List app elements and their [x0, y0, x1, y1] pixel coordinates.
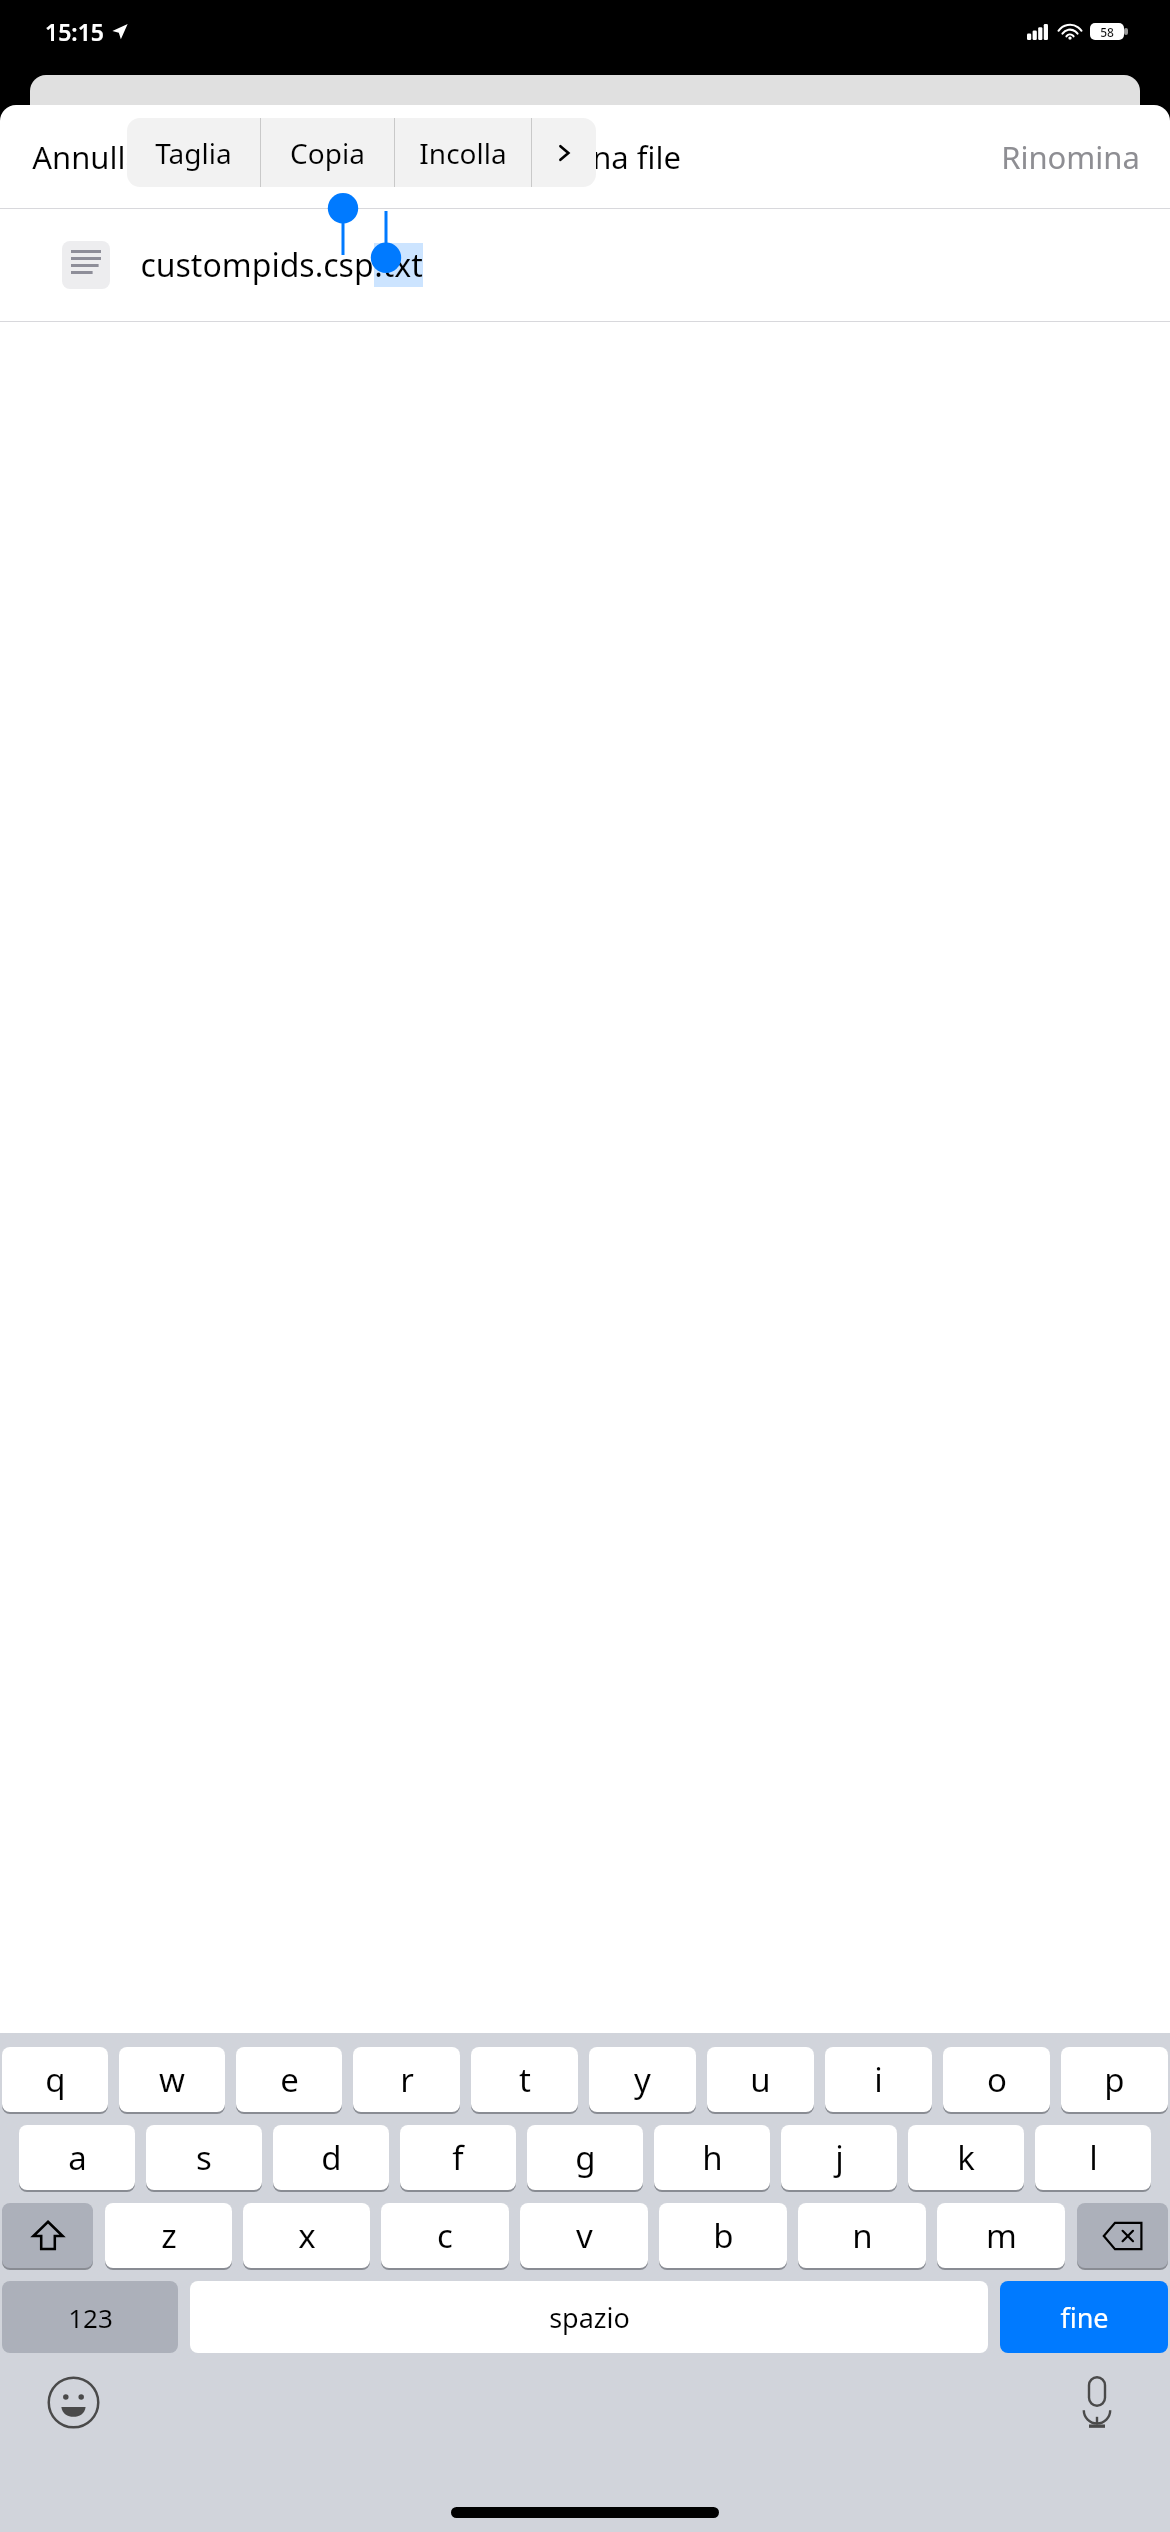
- button[interactable]: s: [146, 2125, 262, 2190]
- staticText: Copia: [290, 134, 365, 172]
- button[interactable]: r: [353, 2047, 460, 2112]
- button[interactable]: Emoji: [42, 2371, 104, 2433]
- staticText: Rinomina: [1001, 136, 1140, 178]
- button[interactable]: b: [659, 2203, 787, 2268]
- staticText: p: [1104, 2057, 1125, 2102]
- staticText: r: [400, 2057, 414, 2102]
- staticText: Rinomina file: [490, 136, 681, 178]
- button[interactable]: x: [243, 2203, 370, 2268]
- button[interactable]: Incolla: [395, 118, 531, 187]
- button[interactable]: o: [943, 2047, 1050, 2112]
- button[interactable]: Annulla: [14, 126, 161, 188]
- button[interactable]: z: [105, 2203, 232, 2268]
- button[interactable]: 123: [2, 2281, 178, 2353]
- staticText: t: [519, 2057, 531, 2102]
- staticText: fine: [1060, 2299, 1109, 2336]
- button[interactable]: Taglia: [127, 118, 260, 187]
- staticText: Annulla: [32, 136, 143, 178]
- staticText: c: [437, 2213, 453, 2258]
- staticText: 123: [68, 2300, 113, 2335]
- staticText: n: [852, 2213, 873, 2258]
- staticText: k: [957, 2135, 975, 2180]
- staticText: y: [634, 2057, 651, 2102]
- staticText: w: [159, 2057, 185, 2102]
- button[interactable]: l: [1035, 2125, 1151, 2190]
- staticText: .txt: [374, 243, 423, 287]
- staticText: 15:15: [45, 16, 104, 47]
- staticText: v: [576, 2213, 593, 2258]
- staticText: d: [321, 2135, 342, 2180]
- staticText: custompids.csp: [140, 243, 374, 287]
- staticText: l: [1089, 2135, 1098, 2180]
- button[interactable]: Copia: [261, 118, 394, 187]
- button[interactable]: i: [825, 2047, 932, 2112]
- staticText: s: [196, 2135, 212, 2180]
- staticText: h: [702, 2135, 723, 2180]
- button[interactable]: a: [19, 2125, 135, 2190]
- button[interactable]: t: [471, 2047, 578, 2112]
- button[interactable]: d: [273, 2125, 389, 2190]
- button[interactable]: w: [119, 2047, 225, 2112]
- button[interactable]: u: [707, 2047, 814, 2112]
- button[interactable]: More actions: [532, 118, 596, 187]
- button[interactable]: c: [381, 2203, 509, 2268]
- button[interactable]: q: [2, 2047, 108, 2112]
- button[interactable]: Rinomina: [985, 126, 1156, 188]
- staticText: b: [713, 2213, 734, 2258]
- button[interactable]: fine: [1000, 2281, 1168, 2353]
- staticText: a: [68, 2135, 87, 2180]
- button[interactable]: Shift: [2, 2203, 93, 2268]
- staticText: f: [452, 2135, 464, 2180]
- staticText: g: [575, 2135, 596, 2180]
- staticText: z: [161, 2213, 177, 2258]
- staticText: Incolla: [419, 134, 507, 172]
- button[interactable]: k: [908, 2125, 1024, 2190]
- button[interactable]: g: [527, 2125, 643, 2190]
- staticText: 58: [1100, 24, 1114, 40]
- button[interactable]: p: [1061, 2047, 1168, 2112]
- staticText: q: [45, 2057, 66, 2102]
- staticText: Taglia: [155, 134, 232, 172]
- staticText: x: [298, 2213, 316, 2258]
- button[interactable]: custompids.csp: [0, 209, 1170, 321]
- staticText: j: [835, 2135, 844, 2180]
- staticText: m: [986, 2213, 1017, 2258]
- button[interactable]: n: [798, 2203, 926, 2268]
- button[interactable]: j: [781, 2125, 897, 2190]
- staticText: spazio: [549, 2299, 630, 2336]
- staticText: e: [280, 2057, 299, 2102]
- button[interactable]: Backspace: [1077, 2203, 1168, 2268]
- button[interactable]: h: [654, 2125, 770, 2190]
- button[interactable]: y: [589, 2047, 696, 2112]
- button[interactable]: spazio: [190, 2281, 988, 2353]
- button[interactable]: e: [236, 2047, 342, 2112]
- button[interactable]: m: [937, 2203, 1065, 2268]
- staticText: i: [874, 2057, 883, 2102]
- staticText: o: [987, 2057, 1007, 2102]
- button[interactable]: f: [400, 2125, 516, 2190]
- staticText: u: [750, 2057, 771, 2102]
- button[interactable]: v: [520, 2203, 648, 2268]
- button[interactable]: Dictation: [1066, 2371, 1128, 2433]
